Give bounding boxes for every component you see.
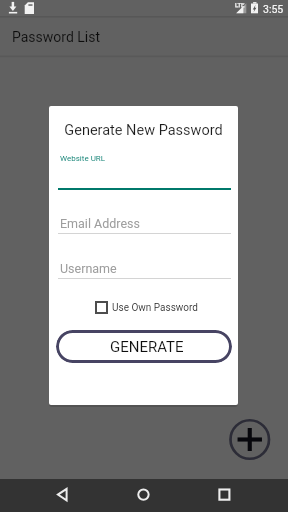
staticText: Email Address [60, 216, 140, 231]
button[interactable]: Add password [228, 418, 271, 461]
staticText: Password List [12, 29, 101, 45]
button[interactable]: Use Own Password [95, 301, 198, 314]
staticText: 3:55 [263, 3, 284, 15]
staticText: Generate New Password [49, 122, 238, 139]
staticText: Username [60, 261, 117, 276]
staticText: Website URL [60, 154, 106, 163]
staticText: Use Own Password [112, 302, 198, 314]
button[interactable]: GENERATE [56, 330, 232, 363]
staticText: LTE [235, 1, 245, 8]
staticText: GENERATE [110, 338, 184, 356]
